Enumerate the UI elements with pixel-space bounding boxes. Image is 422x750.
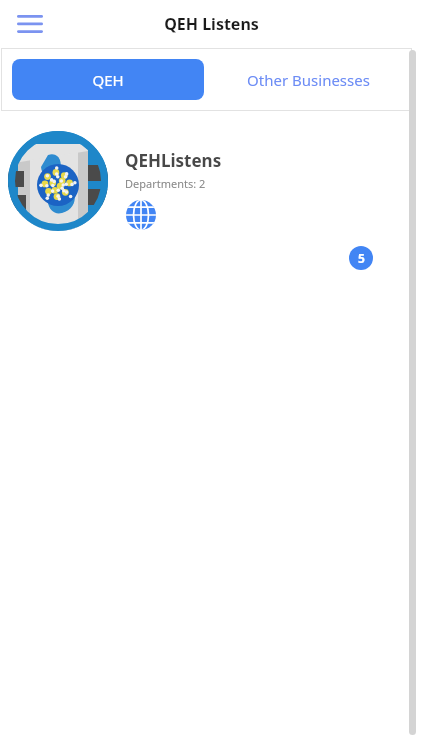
button[interactable]: QEH	[12, 59, 204, 100]
staticText: QEH	[92, 70, 124, 90]
staticText: 5	[358, 250, 365, 266]
button[interactable]: 5	[349, 246, 373, 270]
button[interactable]: Open website	[125, 199, 157, 231]
staticText: QEH Listens	[164, 13, 259, 35]
staticText: Other Businesses	[247, 70, 370, 90]
button[interactable]: QEHListens	[0, 121, 412, 308]
staticText: QEHListens	[125, 149, 222, 172]
staticText: Departments: 2	[125, 176, 206, 191]
button[interactable]: Open navigation menu	[10, 4, 50, 44]
button[interactable]: Other Businesses	[204, 59, 412, 100]
